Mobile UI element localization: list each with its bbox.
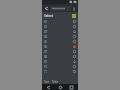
- button[interactable]: Home: [56, 84, 65, 90]
- staticText: 02: [44, 25, 47, 29]
- button[interactable]: Toggle item 09: [73, 60, 76, 63]
- button[interactable]: 08: [42, 54, 78, 59]
- button[interactable]: Back: [44, 84, 53, 90]
- button[interactable]: 04: [42, 34, 78, 39]
- button[interactable]: Toggle item 02: [73, 25, 76, 28]
- button[interactable]: Toggle item 01: [73, 20, 76, 23]
- staticText: 10: [44, 65, 47, 69]
- button[interactable]: Toggle item 07: [73, 50, 76, 53]
- staticText: Select: [44, 14, 54, 18]
- staticText: 11: [44, 70, 47, 74]
- staticText: 06: [44, 45, 47, 49]
- button[interactable]: 11: [42, 69, 78, 74]
- button[interactable]: 03: [42, 29, 78, 34]
- button[interactable]: Toggle item 08: [73, 55, 76, 58]
- staticText: 01: [44, 20, 47, 24]
- button[interactable]: More options: [72, 7, 76, 11]
- staticText: 08: [44, 55, 47, 59]
- button[interactable]: Toggle item 06: [73, 45, 76, 48]
- button[interactable]: 09: [42, 59, 78, 64]
- button[interactable]: Select: [42, 12, 78, 19]
- button[interactable]: Toggle item 11: [73, 70, 76, 73]
- staticText: 09: [44, 60, 47, 64]
- button[interactable]: 10: [42, 64, 78, 69]
- button[interactable]: Toggle item 10: [73, 65, 76, 68]
- button[interactable]: Toggle item 04: [73, 35, 76, 38]
- button[interactable]: 06: [42, 44, 78, 49]
- button[interactable]: 02: [42, 24, 78, 29]
- staticText: 03: [44, 30, 47, 34]
- staticText: Filter: [52, 80, 59, 84]
- staticText: Sort: [44, 80, 50, 84]
- button[interactable]: Back: [42, 4, 78, 12]
- button[interactable]: 01: [42, 19, 78, 24]
- button[interactable]: Back: [44, 6, 49, 11]
- button[interactable]: Toggle item 03: [73, 30, 76, 33]
- button[interactable]: 07: [42, 49, 78, 54]
- button[interactable]: Toggle item 05: [73, 40, 76, 43]
- staticText: 04: [44, 35, 47, 39]
- button[interactable]: Recents: [67, 84, 76, 90]
- staticText: 07: [44, 50, 47, 54]
- button[interactable]: [50, 6, 71, 11]
- button[interactable]: Select all: [72, 14, 76, 18]
- staticText: 05: [44, 40, 47, 44]
- button[interactable]: 05: [42, 39, 78, 44]
